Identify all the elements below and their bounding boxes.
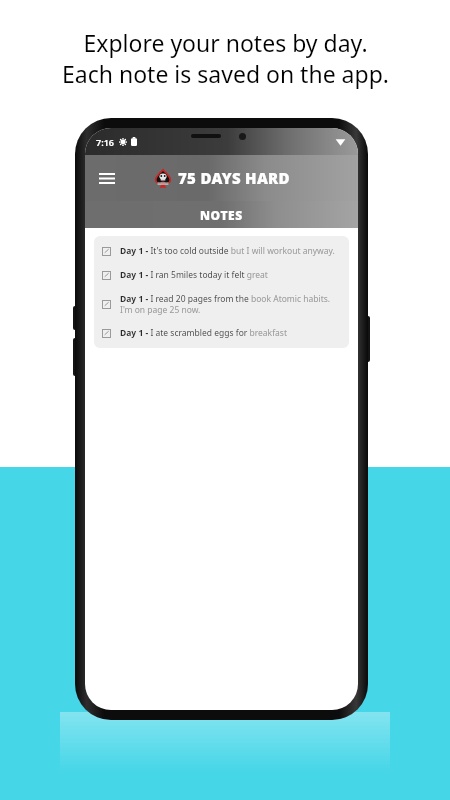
staticText: Each note is saved on the app. [62, 58, 389, 89]
staticText: Day 1 - It's too cold outside but I will… [120, 245, 335, 257]
button[interactable]: Day 1 - I ran 5miles today it felt great [94, 263, 349, 287]
button[interactable]: Open navigation menu [93, 164, 121, 192]
staticText: Explore your notes by day. [83, 27, 368, 58]
staticText: Day 1 - I ran 5miles today it felt great [120, 269, 268, 281]
staticText: 75 DAYS HARD [178, 168, 290, 188]
staticText: 7:16 [96, 136, 114, 148]
staticText: NOTES [200, 207, 243, 223]
staticText: Day 1 - I read 20 pages from the book At… [120, 293, 341, 315]
staticText: Day 1 - I ate scrambled eggs for breakfa… [120, 327, 287, 339]
button[interactable]: Day 1 - It's too cold outside but I will… [94, 239, 349, 263]
button[interactable]: Day 1 - I read 20 pages from the book At… [94, 287, 349, 321]
button[interactable]: Day 1 - I ate scrambled eggs for breakfa… [94, 321, 349, 345]
